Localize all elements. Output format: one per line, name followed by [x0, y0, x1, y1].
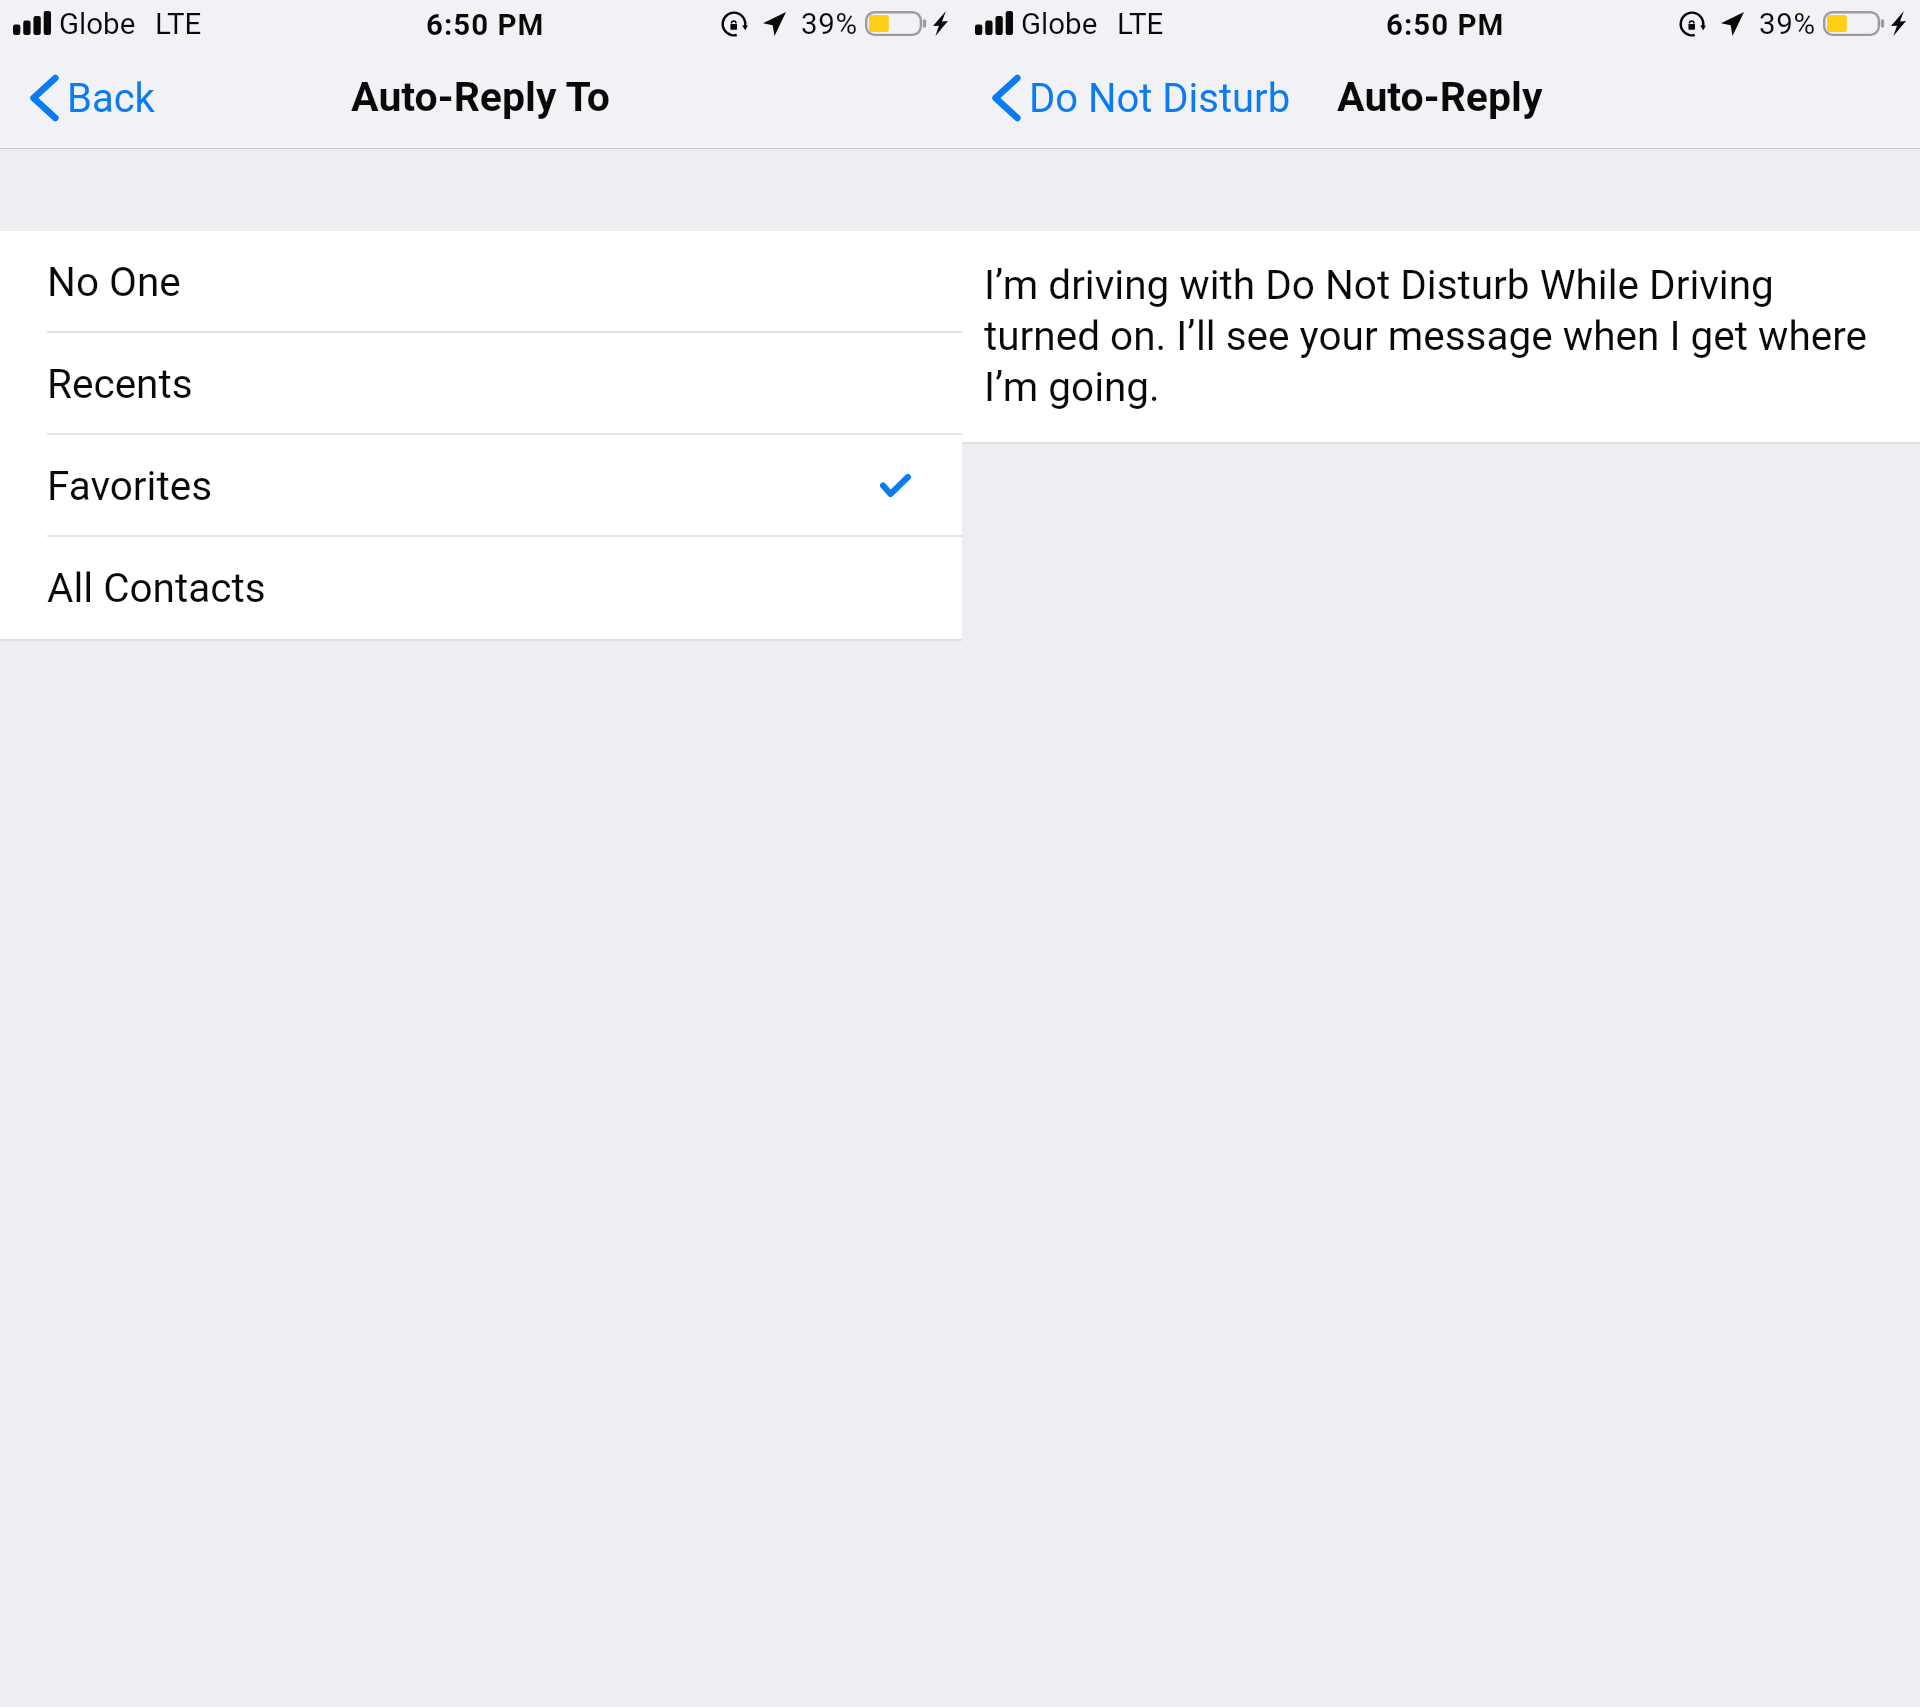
other: Location [763, 12, 786, 36]
staticText: 6:50 PM [426, 8, 545, 43]
button[interactable]: All Contacts [0, 537, 962, 639]
other: Location [1721, 12, 1744, 36]
staticText: LTE [1117, 7, 1164, 42]
staticText: 6:50 PM [1386, 8, 1505, 43]
other: Rotation lock [720, 10, 748, 38]
staticText: 39% [1759, 7, 1816, 42]
staticText: All Contacts [47, 564, 266, 611]
button[interactable]: Back [962, 55, 1313, 149]
button[interactable]: Back [0, 55, 177, 149]
staticText: 39% [801, 7, 858, 42]
staticText: LTE [155, 7, 202, 42]
staticText: Auto-Reply To [351, 73, 610, 121]
button[interactable]: No One [0, 231, 962, 333]
button[interactable]: Favorites [0, 435, 962, 537]
staticText: Do Not Disturb [1029, 75, 1291, 122]
staticText: Auto-Reply [1337, 73, 1543, 121]
other: Back [29, 73, 59, 123]
other: Selected [880, 474, 911, 497]
other: Back [991, 73, 1021, 123]
staticText: Favorites [47, 462, 213, 509]
staticText: Back [67, 75, 155, 122]
staticText: Recents [47, 360, 193, 407]
other: Rotation lock [1678, 10, 1706, 38]
staticText: I’m driving with Do Not Disturb While Dr… [984, 259, 1874, 412]
button[interactable]: Recents [0, 333, 962, 435]
staticText: No One [47, 258, 181, 305]
staticText: Globe [59, 7, 136, 42]
staticText: Globe [1021, 7, 1098, 42]
